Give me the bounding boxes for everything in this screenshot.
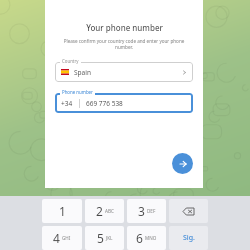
staticText: 2 [96,203,103,219]
staticText: MNO [145,235,157,241]
staticText: Your phone number [86,22,163,33]
staticText: 6 [136,230,143,246]
staticText: Country [62,58,79,64]
button[interactable]: 4 [42,226,82,250]
staticText: 4 [53,230,60,246]
staticText: Please confirm your country code and ent… [59,38,189,50]
button[interactable]: 2 [85,199,124,223]
button[interactable]: 6 [127,226,166,250]
button[interactable]: Next [172,153,193,174]
staticText: Spain [74,68,91,77]
button[interactable]: Backspace [169,199,208,223]
button[interactable]: Select country [55,62,193,82]
staticText: 1 [59,203,66,219]
staticText: Phone number [62,89,93,95]
staticText: 669 776 538 [86,99,123,108]
staticText: Sig. [183,233,195,243]
staticText: 3 [138,203,145,219]
button[interactable]: 5 [85,226,124,250]
button[interactable]: Phone number input [55,93,193,113]
button[interactable]: 1 [42,199,82,223]
staticText: ABC [105,208,114,214]
staticText: 5 [97,230,104,246]
staticText: JKL [106,235,113,241]
staticText: GHI [62,235,71,241]
staticText: DEF [147,208,156,214]
button[interactable]: Sig. [169,226,208,250]
button[interactable]: 3 [127,199,166,223]
staticText: +34 [61,99,73,108]
